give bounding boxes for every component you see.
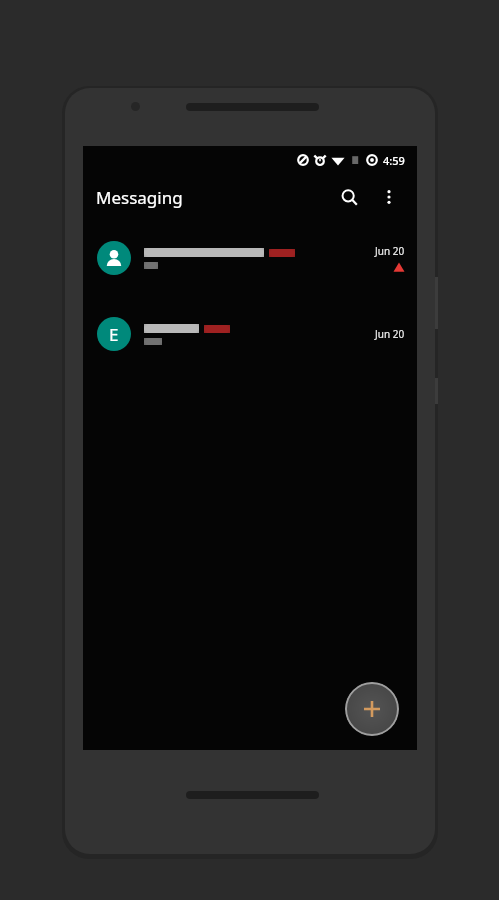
button[interactable]: More options xyxy=(369,177,409,217)
staticText: Jun 20 xyxy=(375,327,405,341)
staticText: Messaging xyxy=(96,186,183,209)
button[interactable]: Search xyxy=(329,177,369,217)
staticText: E xyxy=(109,323,119,346)
staticText: 4:59 xyxy=(383,153,405,168)
button[interactable]: New conversation xyxy=(345,682,399,736)
button[interactable]: Jun 20 xyxy=(83,230,417,286)
button[interactable]: E xyxy=(83,306,417,362)
staticText: Jun 20 xyxy=(375,244,405,258)
